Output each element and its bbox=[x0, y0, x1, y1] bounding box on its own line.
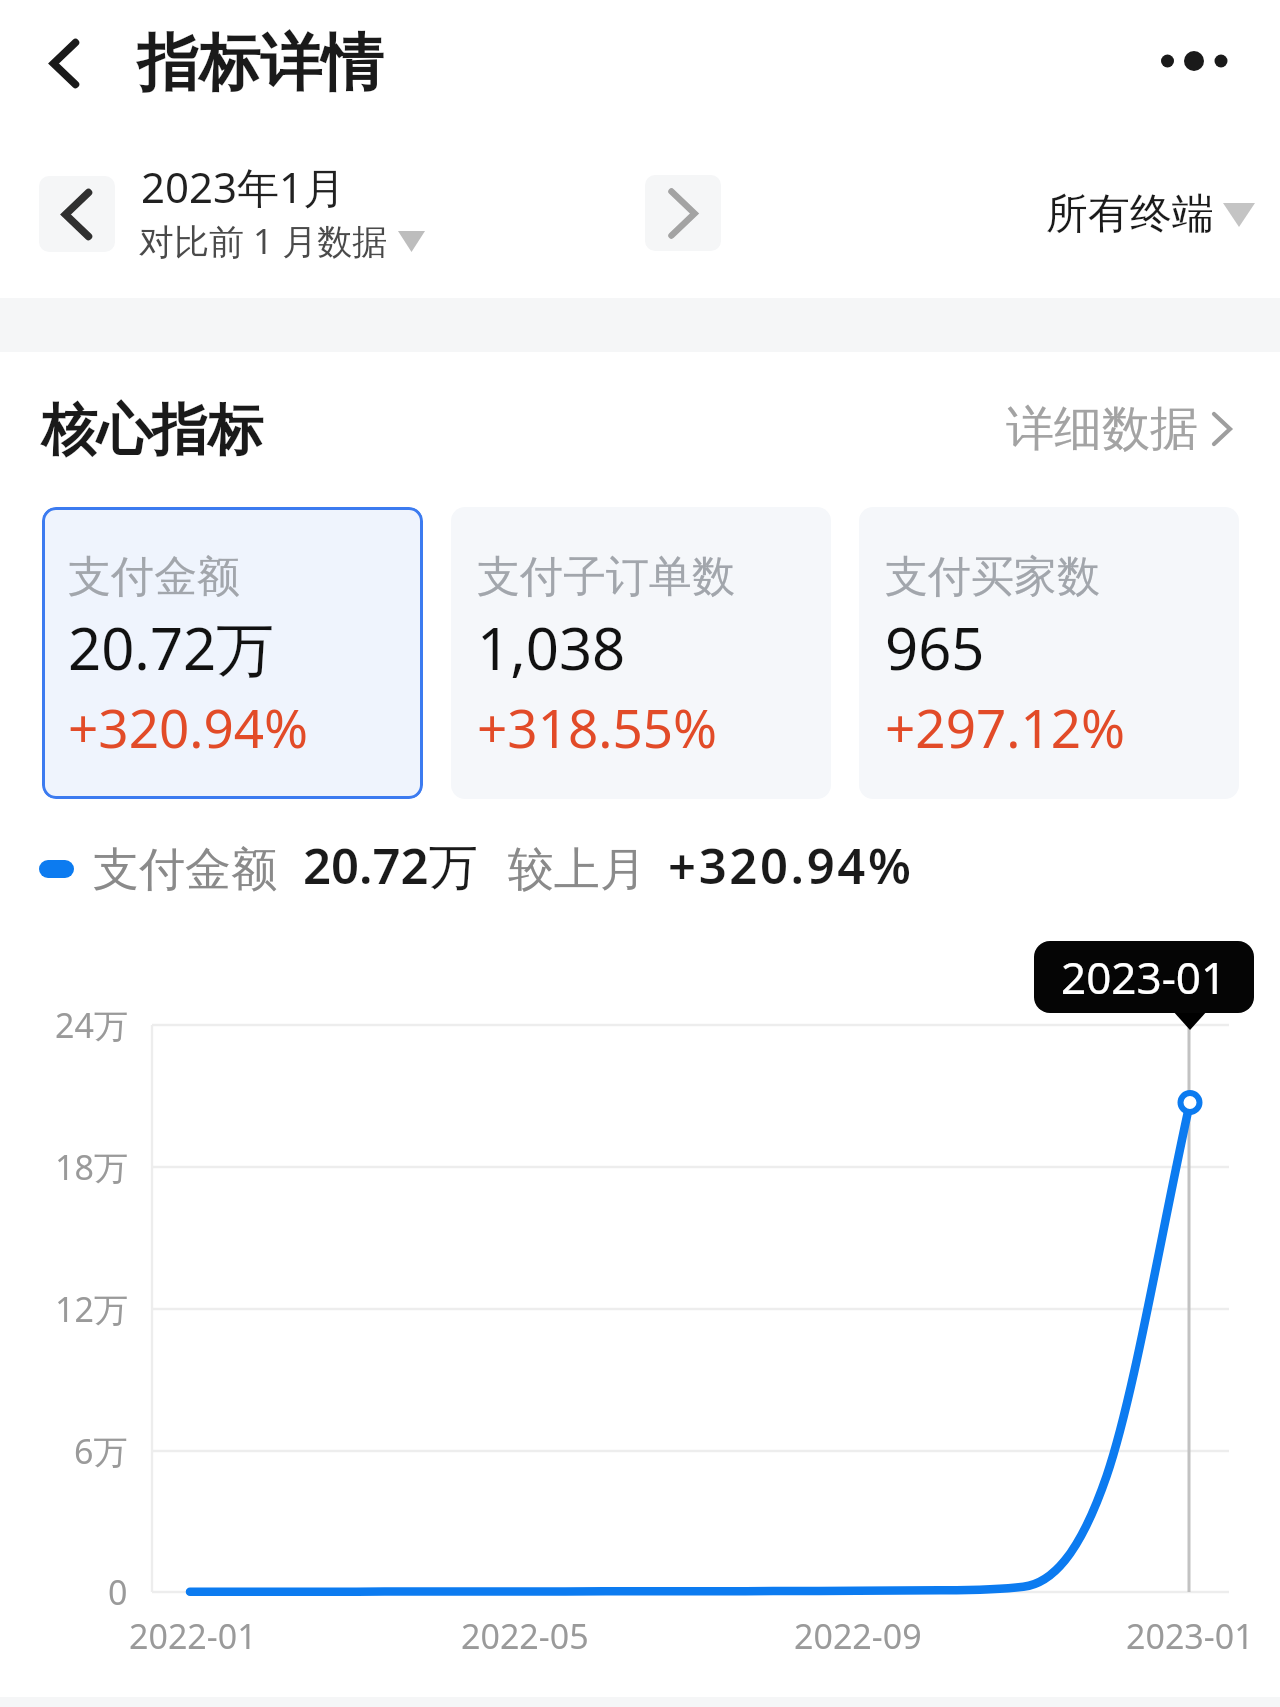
staticText: 24万 bbox=[55, 1002, 128, 1048]
staticText: 较上月 bbox=[508, 841, 646, 899]
button[interactable]: 对比前 1 月数据 bbox=[127, 205, 437, 277]
staticText: 20.72万 bbox=[68, 608, 275, 687]
staticText: 2022-01 bbox=[129, 1613, 257, 1659]
button[interactable]: Next month bbox=[645, 175, 721, 251]
staticText: 支付金额 bbox=[93, 841, 277, 899]
staticText: 965 bbox=[885, 608, 985, 687]
staticText: 指标详情 bbox=[137, 25, 383, 102]
button[interactable]: 支付金额 bbox=[0, 799, 1280, 920]
staticText: 详细数据 bbox=[1006, 399, 1198, 459]
button[interactable]: Back bbox=[26, 25, 102, 101]
staticText: +320.94% bbox=[68, 691, 309, 763]
staticText: +320.94% bbox=[668, 832, 914, 899]
staticText: 1,038 bbox=[477, 608, 626, 687]
staticText: 支付子订单数 bbox=[477, 550, 735, 604]
staticText: 支付金额 bbox=[68, 550, 240, 604]
staticText: 6万 bbox=[74, 1428, 128, 1474]
button[interactable]: More options bbox=[1144, 25, 1244, 97]
staticText: 核心指标 bbox=[41, 396, 263, 466]
button[interactable]: 支付子订单数 bbox=[451, 507, 831, 799]
staticText: 0 bbox=[108, 1569, 128, 1615]
staticText: 2022-05 bbox=[461, 1613, 589, 1659]
staticText: 2023年1月 bbox=[141, 158, 346, 215]
staticText: +318.55% bbox=[477, 691, 718, 763]
button[interactable]: Previous month bbox=[39, 176, 115, 252]
staticText: 对比前 1 月数据 bbox=[139, 217, 388, 265]
staticText: +297.12% bbox=[885, 691, 1126, 763]
staticText: 12万 bbox=[55, 1286, 128, 1332]
staticText: 支付买家数 bbox=[885, 550, 1100, 604]
button[interactable]: 所有终端 bbox=[1026, 170, 1275, 259]
staticText: 所有终端 bbox=[1046, 188, 1214, 241]
staticText: 20.72万 bbox=[303, 832, 478, 899]
staticText: 2023-01 bbox=[1126, 1613, 1254, 1659]
staticText: 18万 bbox=[55, 1144, 128, 1190]
staticText: 2023-01 bbox=[1061, 947, 1227, 1007]
button[interactable]: 详细数据 bbox=[986, 379, 1252, 479]
staticText: 2022-09 bbox=[794, 1613, 922, 1659]
button[interactable]: 支付买家数 bbox=[859, 507, 1239, 799]
button[interactable]: 支付金额 bbox=[42, 507, 423, 799]
